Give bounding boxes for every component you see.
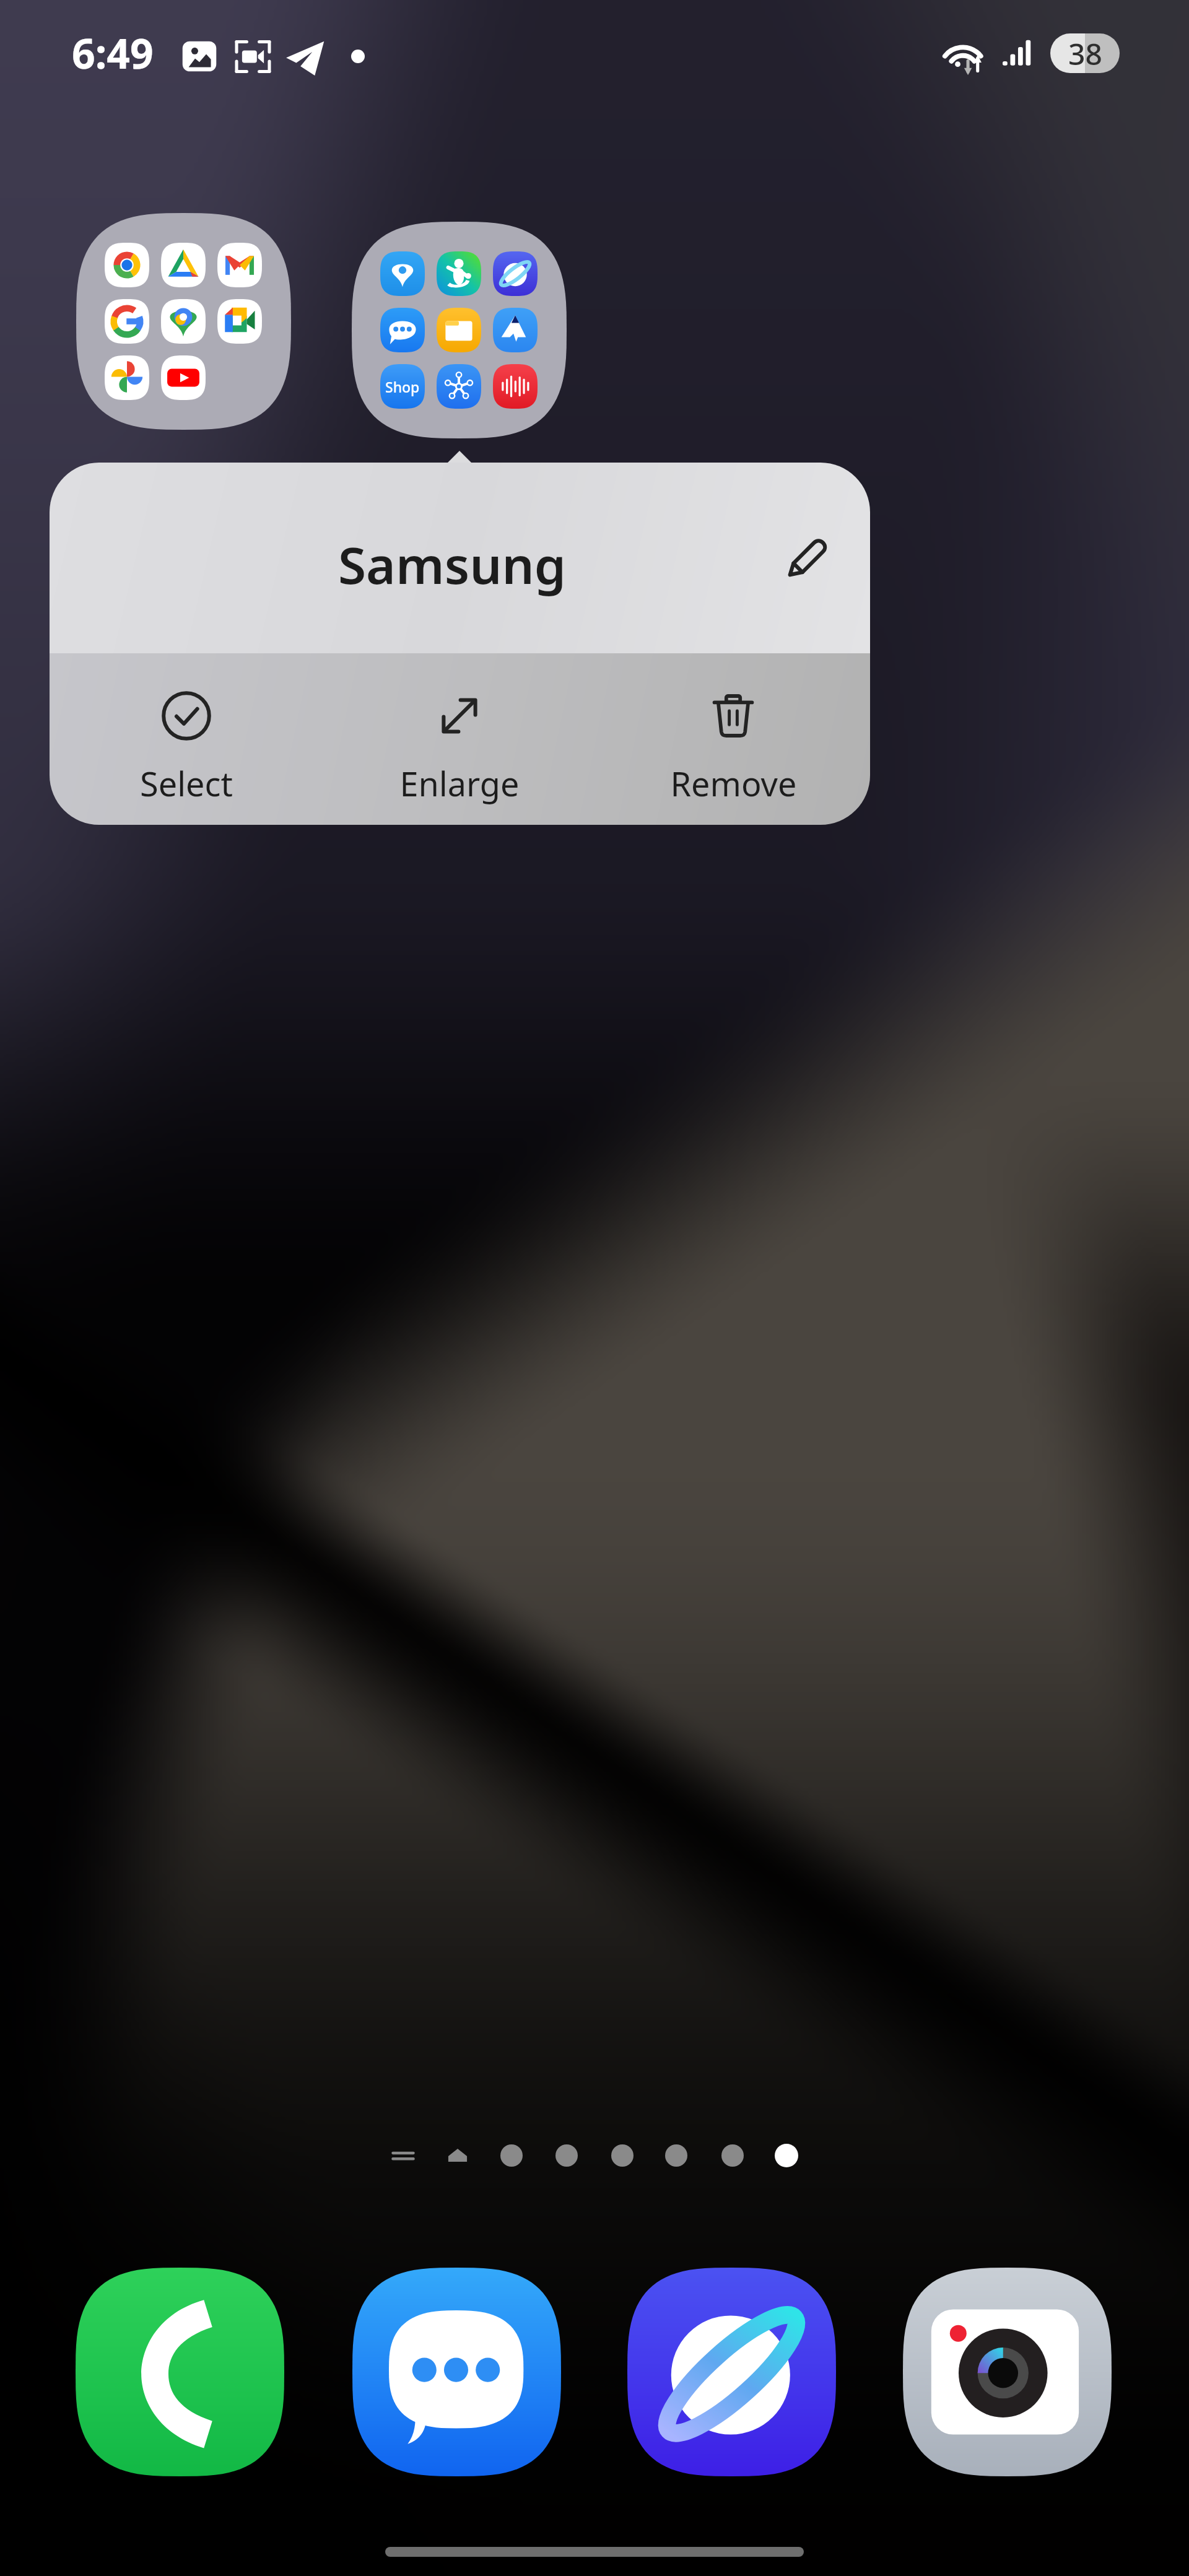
button[interactable]: Camera xyxy=(903,2268,1112,2476)
button[interactable]: App list xyxy=(387,2139,419,2172)
staticText: 6:49 xyxy=(72,25,154,80)
button[interactable]: Current page xyxy=(775,2144,798,2167)
button[interactable]: Rename folder xyxy=(743,463,870,653)
button[interactable]: Page xyxy=(665,2144,687,2167)
button[interactable]: Select xyxy=(50,653,323,825)
button[interactable]: Home page xyxy=(442,2139,474,2172)
button[interactable] xyxy=(76,213,291,430)
button[interactable]: Page xyxy=(611,2144,634,2167)
button[interactable]: Page xyxy=(555,2144,578,2167)
button[interactable]: Shop xyxy=(352,222,567,438)
button[interactable]: Page xyxy=(500,2144,523,2167)
button[interactable]: Page xyxy=(721,2144,744,2167)
button[interactable]: Remove xyxy=(596,653,870,825)
staticText: Select xyxy=(140,760,233,806)
staticText: Remove xyxy=(670,760,797,806)
button[interactable]: Enlarge xyxy=(323,653,596,825)
button[interactable]: Messages xyxy=(352,2268,561,2476)
staticText: Enlarge xyxy=(399,760,520,806)
staticText: 38 xyxy=(1068,33,1102,73)
button[interactable]: Internet xyxy=(627,2268,836,2476)
staticText: Shop xyxy=(385,377,420,396)
staticText: Samsung xyxy=(338,529,567,599)
button[interactable]: Phone xyxy=(76,2268,284,2476)
